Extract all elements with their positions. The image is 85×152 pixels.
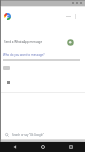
button[interactable]: Who do you want to message? bbox=[0, 51, 85, 59]
button[interactable]: Send a WhatsApp message bbox=[0, 36, 85, 49]
staticText: Search or say "Ok Google" bbox=[12, 133, 44, 137]
button[interactable]: Recents bbox=[57, 142, 85, 152]
button[interactable] bbox=[3, 66, 10, 70]
button[interactable]: Search or say "Ok Google" bbox=[5, 130, 85, 139]
staticText: Who do you want to message? bbox=[3, 53, 45, 57]
button[interactable]: Google bbox=[4, 13, 11, 20]
button[interactable]: More options bbox=[64, 12, 80, 21]
button[interactable]: Home bbox=[29, 142, 57, 152]
button[interactable]: Back bbox=[0, 142, 29, 152]
staticText: Send a WhatsApp message bbox=[4, 40, 43, 44]
